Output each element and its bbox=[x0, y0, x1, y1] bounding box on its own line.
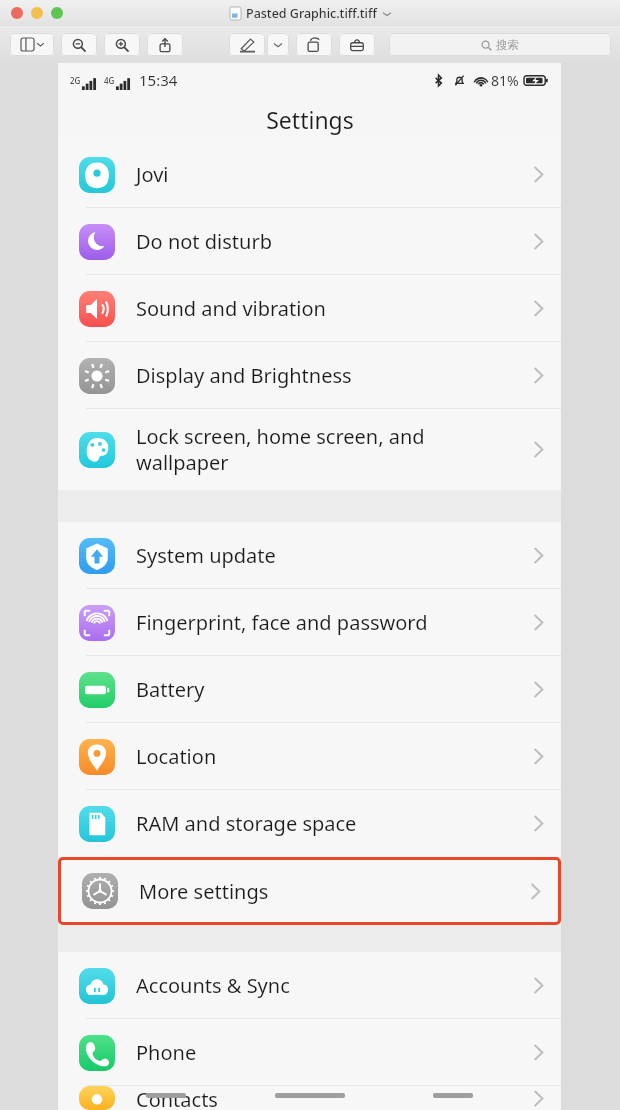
button[interactable]: System update bbox=[58, 522, 561, 589]
staticText: Pasted Graphic.tiff.tiff bbox=[246, 5, 377, 22]
staticText: System update bbox=[136, 542, 533, 569]
staticText: RAM and storage space bbox=[136, 810, 533, 837]
button[interactable]: Search bbox=[389, 33, 611, 56]
button[interactable]: Battery bbox=[58, 656, 561, 723]
button[interactable]: Location bbox=[58, 723, 561, 790]
staticText: More settings bbox=[139, 878, 530, 905]
button[interactable]: Zoom out bbox=[61, 33, 97, 56]
button[interactable]: RAM and storage space bbox=[58, 790, 561, 857]
button[interactable]: Pen options bbox=[267, 33, 289, 56]
button[interactable]: Sound and vibration bbox=[58, 275, 561, 342]
staticText: 搜索 bbox=[496, 38, 519, 52]
staticText: 15:34 bbox=[139, 70, 178, 90]
button[interactable]: Markup pen bbox=[229, 33, 265, 56]
button[interactable]: Rotate bbox=[296, 33, 332, 56]
button[interactable]: Do not disturb bbox=[58, 208, 561, 275]
staticText: Contacts bbox=[136, 1086, 533, 1110]
staticText: Fingerprint, face and password bbox=[136, 609, 533, 636]
button[interactable]: Phone bbox=[58, 1019, 561, 1086]
staticText: 2G bbox=[70, 75, 81, 86]
button[interactable]: Sidebar bbox=[10, 33, 54, 56]
button[interactable]: Lock screen, home screen, and wallpaper bbox=[58, 409, 561, 490]
button[interactable]: More settings bbox=[61, 860, 558, 922]
button[interactable]: Zoom in bbox=[104, 33, 140, 56]
button[interactable]: Contacts bbox=[58, 1086, 561, 1110]
staticText: Location bbox=[136, 743, 533, 770]
staticText: Settings bbox=[266, 104, 354, 135]
button[interactable]: Jovi bbox=[58, 141, 561, 208]
staticText: Accounts & Sync bbox=[136, 972, 533, 999]
button[interactable]: Markup toolbar bbox=[339, 33, 375, 56]
staticText: Sound and vibration bbox=[136, 295, 533, 322]
staticText: Phone bbox=[136, 1039, 533, 1066]
button[interactable]: Share bbox=[147, 33, 183, 56]
button[interactable]: Accounts & Sync bbox=[58, 952, 561, 1019]
staticText: Lock screen, home screen, and wallpaper bbox=[136, 423, 533, 476]
staticText: Battery bbox=[136, 676, 533, 703]
staticText: Display and Brightness bbox=[136, 362, 533, 389]
staticText: 81% bbox=[491, 71, 519, 90]
button[interactable]: Display and Brightness bbox=[58, 342, 561, 409]
staticText: 4G bbox=[104, 75, 115, 86]
button[interactable]: Fingerprint, face and password bbox=[58, 589, 561, 656]
staticText: Do not disturb bbox=[136, 228, 533, 255]
staticText: Jovi bbox=[136, 161, 533, 188]
